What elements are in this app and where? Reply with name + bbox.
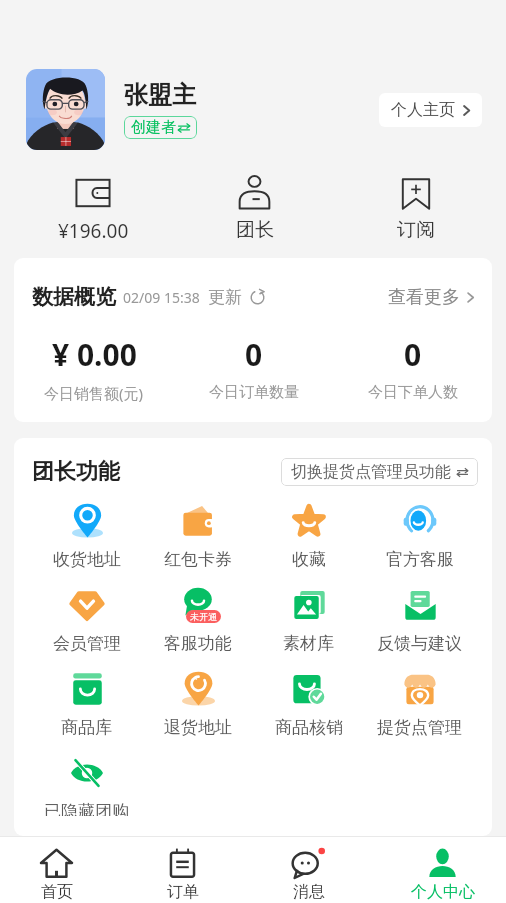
staticText: 未开通 — [190, 611, 217, 622]
staticText: 订阅 — [397, 218, 435, 242]
staticText: 反馈与建议 — [377, 633, 462, 654]
button[interactable]: 收藏 — [253, 501, 364, 570]
staticText: ¥ 0.00 — [52, 334, 137, 375]
staticText: 个人中心 — [411, 882, 475, 902]
staticText: 02/09 15:38 — [123, 288, 200, 307]
staticText: 收藏 — [292, 549, 326, 570]
button[interactable]: 0 — [333, 334, 492, 402]
button[interactable]: 素材库 — [253, 585, 364, 654]
staticText: 个人主页 — [391, 100, 455, 120]
staticText: 素材库 — [283, 633, 334, 654]
button[interactable]: 退货地址 — [142, 669, 253, 738]
staticText: 查看更多 — [388, 286, 460, 309]
staticText: 红包卡券 — [164, 549, 232, 570]
button[interactable]: 团长 — [174, 174, 335, 242]
staticText: 团长 — [236, 218, 274, 242]
staticText: 今日下单人数 — [368, 383, 458, 402]
staticText: ¥196.00 — [58, 218, 129, 244]
button[interactable]: ¥196.00 — [12, 174, 174, 244]
staticText: 官方客服 — [386, 549, 454, 570]
button[interactable]: ¥ 0.00 — [14, 334, 174, 403]
staticText: 会员管理 — [53, 633, 121, 654]
button[interactable]: 收货地址 — [31, 501, 142, 570]
button[interactable]: 切换提货点管理员功能 — [281, 458, 478, 486]
button[interactable]: 提货点管理 — [364, 669, 475, 738]
button[interactable]: 未开通 — [142, 585, 253, 654]
button[interactable]: 查看更多 — [388, 286, 476, 309]
staticText: 0 — [245, 334, 263, 375]
staticText: 更新 — [208, 287, 242, 308]
button[interactable]: 消息 — [252, 837, 365, 903]
button[interactable]: 已隐藏团购 — [31, 753, 142, 816]
staticText: 客服功能 — [164, 633, 232, 654]
staticText: 订单 — [167, 882, 199, 902]
button[interactable]: 0 — [174, 334, 333, 402]
button[interactable]: 商品库 — [31, 669, 142, 738]
staticText: 退货地址 — [164, 717, 232, 738]
staticText: 数据概览 — [32, 284, 116, 310]
staticText: 张盟主 — [124, 80, 196, 110]
staticText: 收货地址 — [53, 549, 121, 570]
staticText: 今日销售额(元) — [44, 383, 144, 403]
staticText: 今日订单数量 — [209, 383, 299, 402]
button[interactable]: 更新 — [208, 287, 266, 308]
other: 刷新 — [249, 289, 266, 306]
staticText: 提货点管理 — [377, 717, 462, 738]
button[interactable]: 红包卡券 — [142, 501, 253, 570]
staticText: 商品库 — [61, 717, 112, 738]
staticText: 首页 — [41, 882, 73, 902]
button[interactable]: 商品核销 — [253, 669, 364, 738]
button[interactable]: 反馈与建议 — [364, 585, 475, 654]
button[interactable]: 会员管理 — [31, 585, 142, 654]
button[interactable]: 官方客服 — [364, 501, 475, 570]
staticText: 消息 — [293, 882, 325, 902]
button[interactable]: 订阅 — [335, 174, 496, 242]
staticText: 创建者 — [131, 118, 176, 137]
button[interactable]: 首页 — [0, 837, 113, 903]
staticText: 商品核销 — [275, 717, 343, 738]
staticText: 已隐藏团购 — [44, 801, 129, 816]
button[interactable]: 个人主页 — [379, 93, 482, 127]
button[interactable]: 个人中心 — [379, 837, 506, 903]
staticText: 切换提货点管理员功能 — [291, 462, 451, 482]
staticText: 团长功能 — [32, 458, 120, 486]
staticText: 0 — [404, 334, 422, 375]
button[interactable]: 订单 — [126, 837, 239, 903]
